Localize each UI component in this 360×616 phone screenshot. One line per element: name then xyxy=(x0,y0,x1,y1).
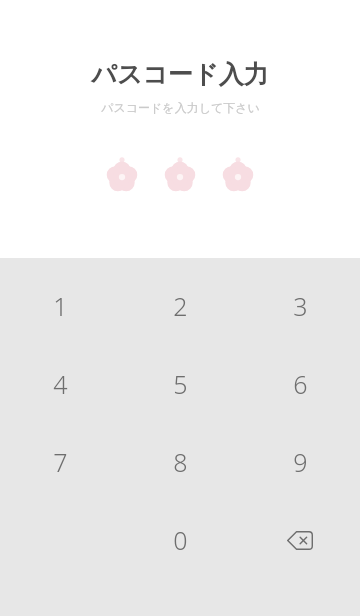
staticText: 1 xyxy=(53,289,68,323)
staticText: 7 xyxy=(53,445,68,479)
button[interactable]: 0 xyxy=(120,501,240,579)
staticText: 5 xyxy=(173,367,188,401)
button[interactable]: 6 xyxy=(240,345,360,423)
staticText: 9 xyxy=(293,445,308,479)
button[interactable]: 1 xyxy=(0,267,120,345)
button[interactable]: 5 xyxy=(120,345,240,423)
staticText: 0 xyxy=(173,523,188,557)
staticText: 2 xyxy=(173,289,188,323)
staticText: パスコード入力 xyxy=(91,59,269,90)
staticText: 6 xyxy=(293,367,308,401)
button[interactable]: 4 xyxy=(0,345,120,423)
button[interactable]: 9 xyxy=(240,423,360,501)
button[interactable]: 2 xyxy=(120,267,240,345)
button[interactable]: Delete xyxy=(240,501,360,579)
staticText: 8 xyxy=(173,445,188,479)
button[interactable]: 8 xyxy=(120,423,240,501)
button[interactable]: 7 xyxy=(0,423,120,501)
staticText: パスコードを入力して下さい xyxy=(101,100,260,115)
staticText: 3 xyxy=(293,289,308,323)
button[interactable]: 3 xyxy=(240,267,360,345)
staticText: 4 xyxy=(53,367,68,401)
